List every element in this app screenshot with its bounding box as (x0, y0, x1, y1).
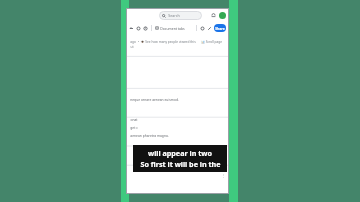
button[interactable]: Star (135, 25, 142, 32)
button[interactable]: Edit mode (206, 25, 213, 32)
staticText: Search (168, 13, 180, 18)
staticText: aenean pharetra magna. (130, 133, 169, 137)
staticText: Share (215, 26, 225, 31)
button[interactable]: Share (214, 24, 226, 32)
button[interactable]: Search (159, 11, 202, 20)
button[interactable]: Undo (128, 25, 135, 32)
staticText: will appear in two places, (136, 148, 224, 158)
staticText: ago • 👁 See how many people viewed this (130, 40, 196, 44)
staticText: Document tabs (160, 26, 185, 31)
button[interactable]: Document tabs (154, 24, 186, 32)
button[interactable]: History (142, 25, 149, 32)
staticText: get c (130, 125, 138, 129)
staticText: 📊 Scroll page details (198, 40, 225, 44)
button[interactable]: Notifications (209, 11, 217, 19)
button[interactable]: Account (219, 12, 226, 19)
staticText: onat (130, 117, 138, 121)
staticText: neque ornare aenean euismod. (130, 97, 179, 101)
staticText: ⋮ (221, 173, 225, 178)
button[interactable]: Options (220, 172, 226, 178)
staticText: ut (130, 45, 134, 49)
button[interactable]: Comment (199, 25, 206, 32)
staticText: So first it will be in the (140, 159, 221, 169)
